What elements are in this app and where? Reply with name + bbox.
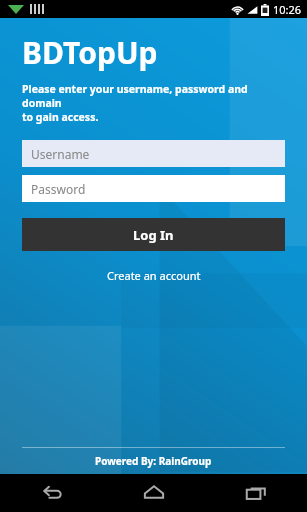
button[interactable]: Home [103,474,205,512]
button[interactable]: Create an account [101,266,207,285]
button[interactable]: Log In [22,218,285,251]
button[interactable]: Back [0,474,103,512]
staticText: Log In [133,226,174,244]
staticText: Create an account [107,268,201,283]
staticText: Username [31,146,90,162]
button[interactable]: Password [22,175,285,202]
staticText: Please enter your username, password and… [22,82,285,124]
staticText: Powered By: RainGroup [95,454,212,468]
button[interactable]: Recent apps [205,474,307,512]
staticText: BDTopUp [22,32,158,73]
staticText: 10:26 [273,2,302,17]
staticText: Password [31,181,86,197]
button[interactable]: Username [22,140,285,167]
